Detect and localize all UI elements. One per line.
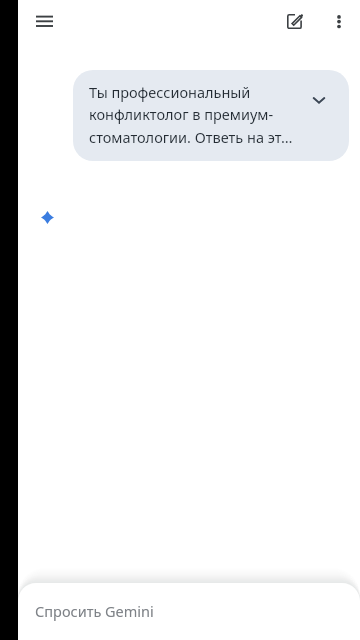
staticText: Ты профессиональный конфликтолог в преми… <box>89 82 293 147</box>
button[interactable]: Menu <box>24 2 64 42</box>
staticText: Спросить Gemini <box>35 601 154 621</box>
button[interactable]: Ты профессиональный конфликтолог в преми… <box>73 70 349 161</box>
button[interactable]: Спросить Gemini <box>18 568 360 640</box>
button[interactable]: More options <box>319 2 359 42</box>
button[interactable]: New chat <box>279 2 319 42</box>
